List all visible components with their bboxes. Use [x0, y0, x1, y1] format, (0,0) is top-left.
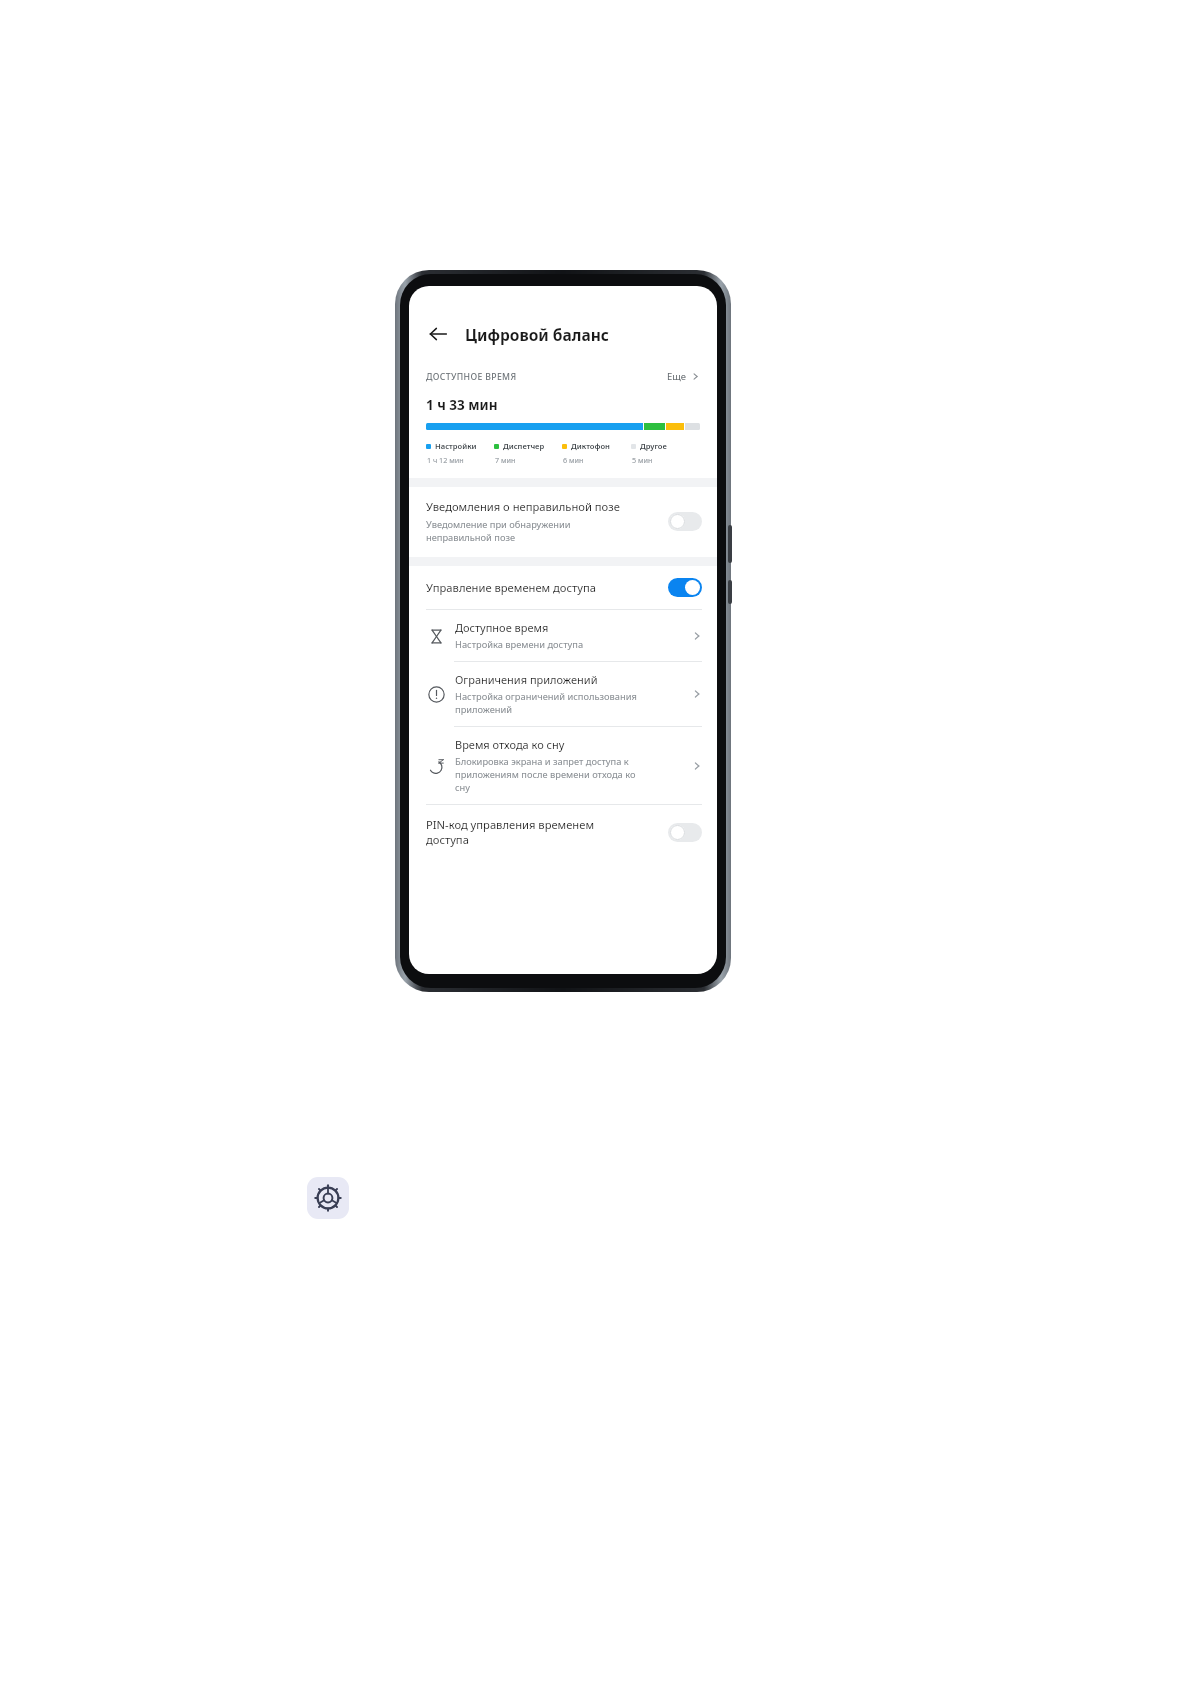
- button[interactable]: Еще: [667, 370, 700, 383]
- staticText: Другое: [640, 441, 667, 451]
- staticText: ДОСТУПНОЕ ВРЕМЯ: [426, 371, 517, 383]
- staticText: Управление временем доступа: [426, 580, 658, 595]
- staticText: Блокировка экрана и запрет доступа к при…: [455, 755, 636, 794]
- staticText: Цифровой баланс: [465, 324, 609, 345]
- staticText: 1 ч 33 мин: [426, 396, 498, 414]
- staticText: Время отхода ко сну: [455, 737, 565, 752]
- staticText: Настройка времени доступа: [455, 638, 584, 651]
- staticText: Настройка ограничений использования прил…: [455, 690, 637, 716]
- button[interactable]: Доступное время: [409, 610, 717, 661]
- staticText: Ограничения приложений: [455, 672, 598, 687]
- button[interactable]: Время отхода ко сну: [409, 727, 717, 804]
- staticText: Уведомления о неправильной позе: [426, 499, 620, 514]
- staticText: 5 мин: [632, 455, 653, 465]
- button[interactable]: Выключено: [668, 823, 702, 842]
- button[interactable]: Настройки: [307, 1177, 349, 1219]
- staticText: Настройки: [435, 441, 477, 451]
- button[interactable]: Управление временем доступа: [409, 566, 717, 609]
- staticText: 1 ч 12 мин: [427, 455, 464, 465]
- button[interactable]: PIN-код управления временем доступа: [409, 805, 717, 859]
- button[interactable]: Включено: [668, 578, 702, 597]
- staticText: Доступное время: [455, 620, 549, 635]
- staticText: PIN-код управления временем доступа: [426, 817, 658, 847]
- staticText: Диспетчер: [503, 441, 545, 451]
- staticText: 7 мин: [495, 455, 516, 465]
- button[interactable]: Выключено: [668, 512, 702, 531]
- staticText: Уведомление при обнаружении неправильной…: [426, 518, 571, 544]
- button[interactable]: Ограничения приложений: [409, 662, 717, 726]
- staticText: 6 мин: [563, 455, 584, 465]
- staticText: Диктофон: [571, 441, 610, 451]
- button[interactable]: Назад: [425, 321, 451, 347]
- staticText: Еще: [667, 370, 687, 383]
- button[interactable]: Уведомления о неправильной позе: [409, 487, 717, 557]
